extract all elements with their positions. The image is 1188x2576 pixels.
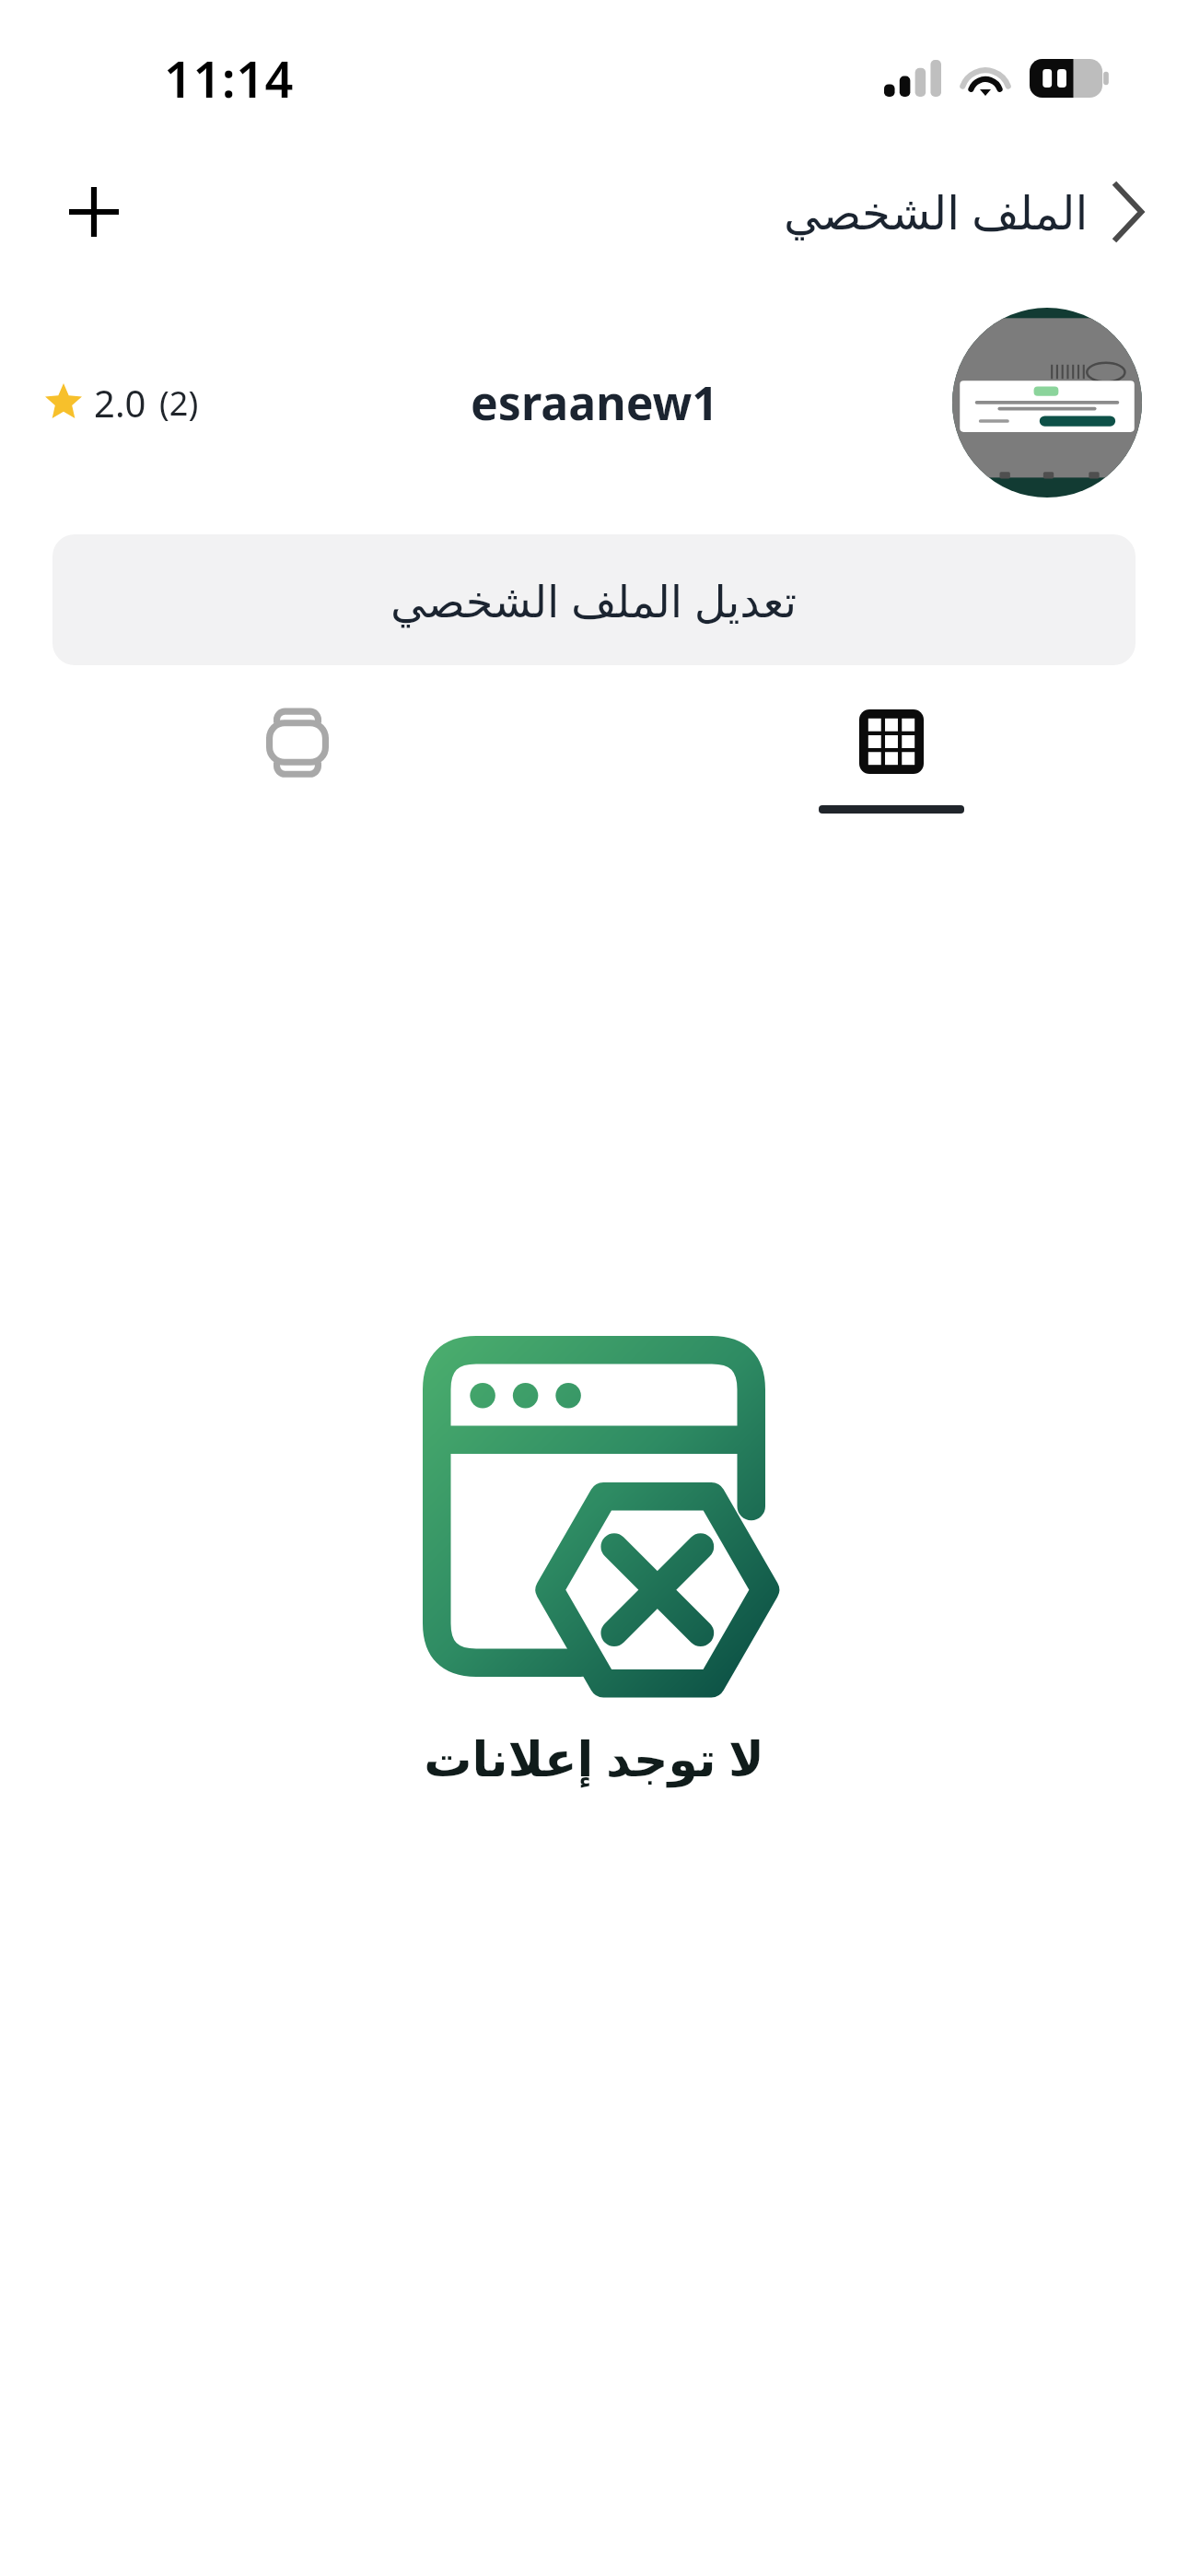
button[interactable]: Grid view xyxy=(594,691,1188,838)
staticText: (2) xyxy=(159,381,199,426)
staticText: الملف الشخصي xyxy=(784,181,1089,243)
button[interactable]: Add xyxy=(55,173,133,251)
button[interactable]: esraanew1 xyxy=(471,371,718,434)
staticText: 2.0 xyxy=(94,378,146,427)
staticText: لا توجد إعلانات xyxy=(424,1725,764,1790)
button[interactable]: 2.0 xyxy=(44,378,199,427)
staticText: 11:14 xyxy=(164,44,294,112)
staticText: تعديل الملف الشخصي xyxy=(390,570,798,630)
button[interactable]: تعديل الملف الشخصي xyxy=(52,534,1136,665)
button[interactable]: الملف الشخصي xyxy=(784,181,1144,243)
button[interactable]: Profile photo xyxy=(952,308,1142,498)
button[interactable]: Saved xyxy=(0,691,594,838)
